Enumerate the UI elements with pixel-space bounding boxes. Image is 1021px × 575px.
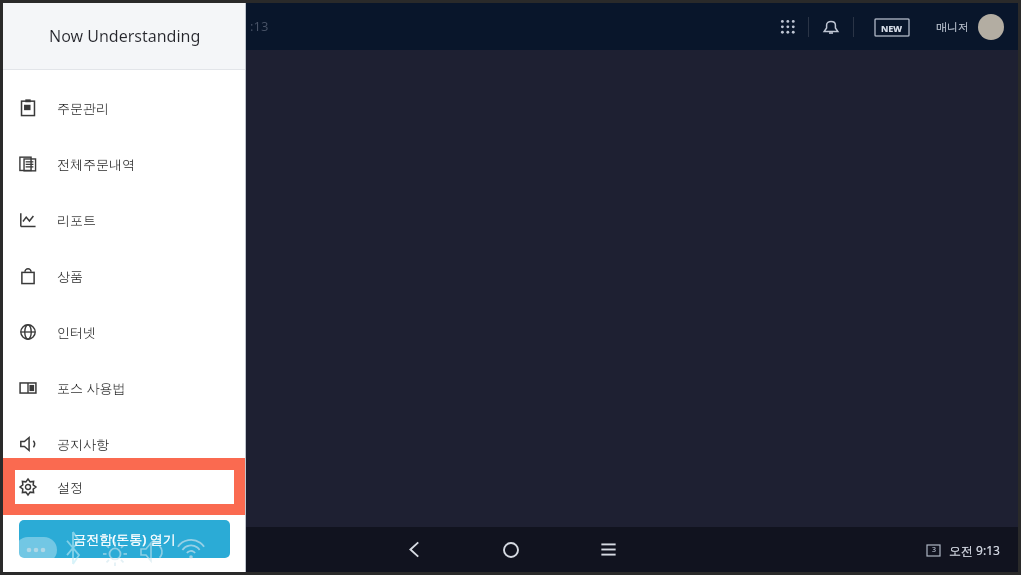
- button[interactable]: 포스 사용법: [3, 360, 246, 416]
- staticText: 금전함(돈통) 열기: [73, 530, 176, 548]
- button[interactable]: 공지사항: [3, 416, 246, 472]
- staticText: 3: [932, 545, 937, 555]
- button[interactable]: 금전함(돈통) 열기: [19, 520, 230, 558]
- button[interactable]: Back: [390, 527, 438, 572]
- button[interactable]: 리포트: [3, 192, 246, 248]
- staticText: 주문관리: [57, 100, 109, 116]
- button[interactable]: Recent apps: [584, 527, 632, 572]
- staticText: :13: [250, 17, 269, 35]
- staticText: NEW: [881, 22, 903, 34]
- staticText: 상품: [57, 268, 83, 284]
- staticText: 포스 사용법: [57, 379, 126, 397]
- button[interactable]: 매니저: [936, 14, 1004, 40]
- button[interactable]: 전체주문내역: [3, 136, 246, 192]
- button[interactable]: 설정: [3, 458, 246, 515]
- staticText: 공지사항: [57, 436, 109, 452]
- staticText: 오전 9:13: [949, 542, 1000, 558]
- staticText: 인터넷: [57, 324, 96, 340]
- staticText: Now Understanding: [49, 25, 201, 47]
- button[interactable]: Apps: [768, 7, 808, 47]
- button[interactable]: 인터넷: [3, 304, 246, 360]
- button[interactable]: NEW: [872, 18, 912, 37]
- button[interactable]: Notifications: [809, 5, 853, 49]
- button[interactable]: Home: [487, 527, 535, 572]
- staticText: 설정: [57, 479, 83, 495]
- staticText: 전체주문내역: [57, 156, 135, 172]
- button[interactable]: 상품: [3, 248, 246, 304]
- staticText: 리포트: [57, 212, 96, 228]
- button[interactable]: 주문관리: [3, 80, 246, 136]
- staticText: 매니저: [936, 20, 969, 34]
